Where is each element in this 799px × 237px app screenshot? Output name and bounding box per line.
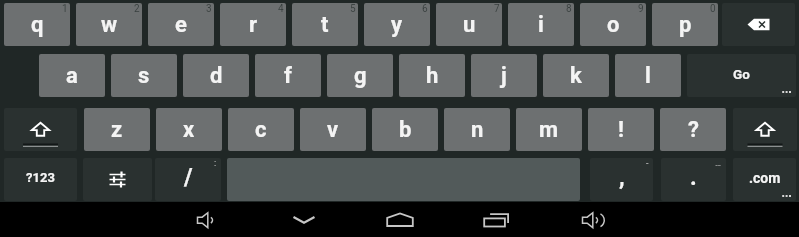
staticText: 9	[638, 3, 644, 15]
button[interactable]: Hide keyboard	[280, 202, 328, 237]
button[interactable]: g	[327, 54, 393, 97]
button[interactable]: p	[652, 3, 718, 46]
staticText: !	[618, 117, 624, 143]
button[interactable]: u	[436, 3, 502, 46]
button[interactable]: n	[444, 108, 510, 151]
button[interactable]: m	[516, 108, 582, 151]
button[interactable]: l	[615, 54, 681, 97]
staticText: r	[249, 12, 258, 38]
button[interactable]: k	[543, 54, 609, 97]
button[interactable]: h	[399, 54, 465, 97]
staticText: h	[426, 63, 439, 89]
staticText: …	[715, 158, 722, 169]
button[interactable]: s	[111, 54, 177, 97]
staticText: -	[646, 158, 649, 169]
staticText: f	[284, 63, 292, 89]
staticText: n	[471, 117, 484, 143]
button[interactable]: d	[183, 54, 249, 97]
staticText: s	[138, 63, 150, 89]
button[interactable]: q	[4, 3, 70, 46]
staticText: 2	[134, 3, 140, 15]
button[interactable]: z	[84, 108, 150, 151]
staticText: ,	[619, 164, 625, 191]
button[interactable]: w	[76, 3, 142, 46]
staticText: c	[255, 117, 267, 143]
button[interactable]: r	[220, 3, 286, 46]
button[interactable]: y	[364, 3, 430, 46]
staticText: 4	[278, 3, 284, 15]
staticText: g	[354, 63, 367, 89]
button[interactable]: j	[471, 54, 537, 97]
staticText: p	[679, 12, 692, 38]
button[interactable]: a	[39, 54, 105, 97]
button[interactable]: v	[300, 108, 366, 151]
button[interactable]: !	[588, 108, 654, 151]
staticText: 3	[206, 3, 212, 15]
button[interactable]: e	[148, 3, 214, 46]
staticText: 8	[566, 3, 572, 15]
button[interactable]: f	[255, 54, 321, 97]
button[interactable]: ,	[590, 158, 653, 201]
staticText: ?123	[26, 170, 55, 185]
button[interactable]: .	[661, 158, 726, 201]
staticText: 1	[62, 3, 68, 15]
button[interactable]: i	[508, 3, 574, 46]
staticText: m	[539, 117, 559, 143]
staticText: k	[570, 63, 582, 89]
staticText: e	[175, 12, 187, 38]
staticText: l	[645, 63, 651, 89]
button[interactable]: Input settings	[83, 158, 152, 201]
staticText: v	[327, 117, 339, 143]
button[interactable]: Home	[376, 202, 424, 237]
staticText: 6	[422, 3, 428, 15]
button[interactable]: Volume down	[182, 202, 230, 237]
button[interactable]: c	[228, 108, 294, 151]
staticText: t	[321, 12, 329, 38]
button[interactable]: b	[372, 108, 438, 151]
button[interactable]: /	[155, 158, 221, 201]
staticText: ?	[688, 117, 699, 143]
staticText: /	[184, 164, 193, 191]
staticText: a	[66, 63, 78, 89]
button[interactable]: Shift	[4, 108, 77, 151]
staticText: u	[463, 12, 476, 38]
button[interactable]: Backspace	[722, 3, 795, 46]
button[interactable]: ?	[660, 108, 726, 151]
staticText: w	[101, 12, 118, 38]
staticText: o	[607, 12, 620, 38]
button[interactable]: t	[292, 3, 358, 46]
staticText: j	[501, 63, 507, 89]
staticText: d	[210, 63, 223, 89]
button[interactable]: o	[580, 3, 646, 46]
staticText: 5	[350, 3, 356, 15]
staticText: Go	[733, 66, 750, 82]
staticText: .	[690, 164, 697, 191]
button[interactable]: .com	[733, 158, 796, 201]
staticText: b	[399, 117, 412, 143]
staticText: x	[183, 117, 195, 143]
staticText: q	[31, 12, 44, 38]
staticText: z	[111, 117, 123, 143]
staticText: y	[391, 12, 403, 38]
button[interactable]: ?123	[4, 158, 77, 201]
button[interactable]: Go	[687, 54, 796, 97]
button[interactable]: Shift	[733, 108, 797, 151]
button[interactable]: Volume up	[567, 202, 615, 237]
staticText: 7	[494, 3, 500, 15]
staticText: :	[214, 158, 217, 169]
staticText: 0	[710, 3, 716, 15]
button[interactable]: Recent apps	[471, 202, 519, 237]
staticText: .com	[749, 170, 781, 186]
button[interactable]: x	[156, 108, 222, 151]
staticText: i	[538, 12, 544, 38]
